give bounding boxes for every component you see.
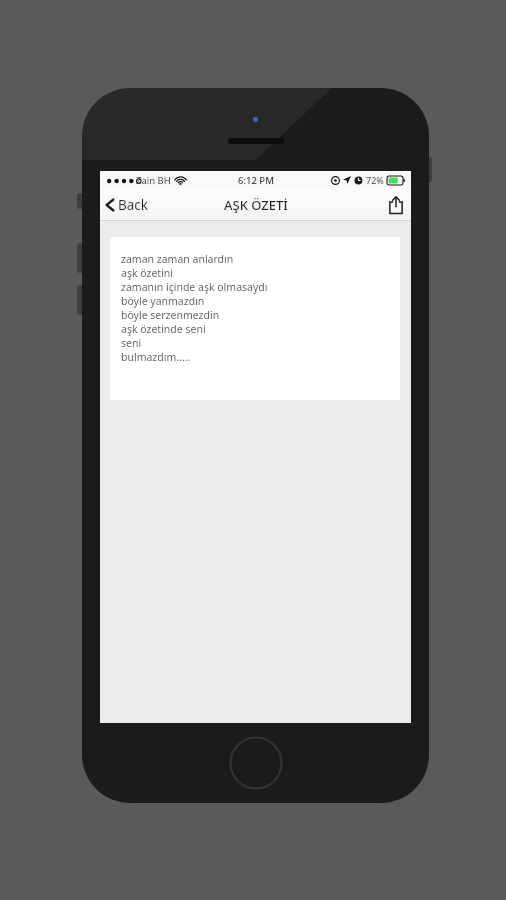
staticText: böyle serzenmezdin xyxy=(121,308,220,322)
staticText: 72% xyxy=(366,174,384,186)
staticText: zamanın içinde aşk olmasaydı xyxy=(121,280,268,294)
button[interactable]: Share xyxy=(381,192,411,218)
staticText: seni xyxy=(121,336,142,350)
button[interactable]: zaman zaman anlardın xyxy=(110,237,400,400)
staticText: bulmazdım..... xyxy=(121,350,191,364)
staticText: böyle yanmazdın xyxy=(121,294,205,308)
staticText: aşk özetini xyxy=(121,266,174,280)
staticText: aşk özetinde seni xyxy=(121,322,206,336)
staticText: zaman zaman anlardın xyxy=(121,252,234,266)
staticText: Back xyxy=(118,196,149,214)
staticText: AŞK ÖZETİ xyxy=(224,196,288,214)
button[interactable]: Home xyxy=(229,736,283,790)
staticText: Zain BH xyxy=(136,174,171,187)
button[interactable]: Back xyxy=(100,192,159,218)
staticText: 6:12 PM xyxy=(238,174,274,187)
